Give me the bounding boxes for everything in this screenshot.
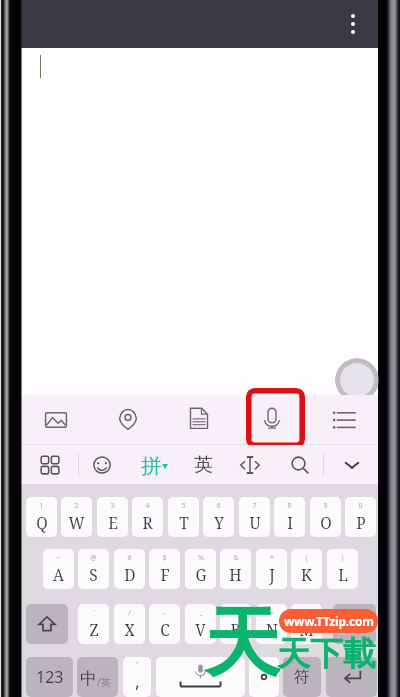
staticText: A <box>53 564 64 585</box>
staticText: ~ <box>56 553 61 563</box>
button[interactable]: 1 <box>26 497 57 537</box>
button[interactable]: & <box>220 549 251 589</box>
staticText: 0 <box>358 501 363 511</box>
button[interactable]: ` <box>78 604 109 644</box>
staticText: ` <box>93 608 95 618</box>
staticText: 英 <box>194 453 213 477</box>
staticText: 中 <box>80 668 97 689</box>
button[interactable]: Document <box>175 396 223 444</box>
staticText: 符 <box>294 667 310 687</box>
staticText: " <box>305 608 308 618</box>
staticText: # <box>127 553 132 563</box>
button[interactable]: 3 <box>97 497 128 537</box>
staticText: * <box>270 553 274 563</box>
staticText: 1 <box>39 501 44 511</box>
button[interactable]: = <box>256 604 287 644</box>
button[interactable]: 7 <box>239 497 270 537</box>
button[interactable]: Shift <box>26 604 68 644</box>
staticText: 天 <box>204 596 280 680</box>
button[interactable]: * <box>256 549 287 589</box>
button[interactable]: Space <box>156 657 245 697</box>
staticText: 5 <box>181 501 186 511</box>
button[interactable]: 英 <box>187 446 219 484</box>
staticText: H <box>229 564 242 585</box>
staticText: 6 <box>216 501 221 511</box>
button[interactable]: Keyboard layouts <box>31 446 69 484</box>
button[interactable]: List <box>320 396 368 444</box>
staticText: / <box>128 608 131 618</box>
staticText: E <box>108 512 118 533</box>
button[interactable]: # <box>114 549 145 589</box>
staticText: G <box>195 564 207 585</box>
button[interactable]: Emoji <box>83 446 121 484</box>
button[interactable]: _ <box>185 604 216 644</box>
staticText: R <box>142 512 153 533</box>
staticText: 4 <box>145 501 150 511</box>
button[interactable]: - <box>149 604 180 644</box>
button[interactable]: $ <box>149 549 180 589</box>
staticText: 2 <box>74 501 79 511</box>
button[interactable]: Backspace <box>333 604 376 644</box>
button[interactable]: 拼 <box>136 446 174 484</box>
staticText: U <box>249 512 261 533</box>
staticText: ' <box>136 659 139 671</box>
button[interactable]: More options <box>338 9 368 39</box>
button[interactable]: 9 <box>310 497 341 537</box>
staticText: , <box>135 669 140 694</box>
button[interactable]: ( <box>291 549 322 589</box>
button[interactable]: 8 <box>274 497 305 537</box>
button[interactable]: Search <box>281 446 319 484</box>
staticText: K <box>301 564 312 585</box>
button[interactable]: Image <box>32 396 80 444</box>
button[interactable]: / <box>114 604 145 644</box>
button[interactable]: " <box>291 604 322 644</box>
staticText: F <box>160 564 170 585</box>
staticText: ) <box>341 553 344 563</box>
button[interactable]: + <box>220 604 251 644</box>
staticText: X <box>124 619 135 640</box>
button[interactable]: 0 <box>345 497 376 537</box>
staticText: $ <box>162 553 167 563</box>
staticText: J <box>269 564 275 585</box>
staticText: 8 <box>287 501 292 511</box>
button[interactable]: 6 <box>203 497 234 537</box>
staticText: I <box>287 512 293 533</box>
button[interactable]: 123 <box>26 657 73 697</box>
staticText: 天下載 <box>277 633 376 673</box>
button[interactable]: 5 <box>168 497 199 537</box>
button[interactable]: ' <box>123 657 151 697</box>
staticText: B <box>230 619 241 640</box>
staticText: O <box>320 512 332 533</box>
staticText: 拼 <box>141 453 162 479</box>
button[interactable]: Hide keyboard <box>333 446 371 484</box>
button[interactable]: ) <box>327 549 358 589</box>
button[interactable]: 2 <box>61 497 92 537</box>
staticText: - <box>163 608 166 618</box>
button[interactable]: @ <box>78 549 109 589</box>
staticText: _ <box>199 608 203 618</box>
staticText: ( <box>305 553 308 563</box>
button[interactable]: Voice input <box>248 396 296 444</box>
staticText: 123 <box>36 666 64 688</box>
staticText: C <box>160 619 170 640</box>
button[interactable]: Location <box>104 396 152 444</box>
button[interactable]: Period <box>249 657 279 697</box>
button[interactable]: 符 <box>283 657 321 697</box>
staticText: @ <box>90 553 97 563</box>
staticText: + <box>233 608 238 618</box>
staticText: V <box>195 619 206 640</box>
staticText: T <box>179 512 189 533</box>
button[interactable]: 中 <box>77 657 118 697</box>
button[interactable]: Drag handle <box>335 358 379 402</box>
staticText: /英 <box>97 675 111 689</box>
button[interactable]: Enter <box>326 657 377 697</box>
staticText: M <box>299 619 314 640</box>
staticText: Z <box>89 619 99 640</box>
staticText: = <box>269 608 274 618</box>
button[interactable]: % <box>185 549 216 589</box>
staticText: www.TTzip.com <box>284 613 374 629</box>
button[interactable]: ~ <box>43 549 74 589</box>
staticText: P <box>356 512 366 533</box>
button[interactable]: 4 <box>132 497 163 537</box>
button[interactable]: Cursor control <box>231 446 269 484</box>
